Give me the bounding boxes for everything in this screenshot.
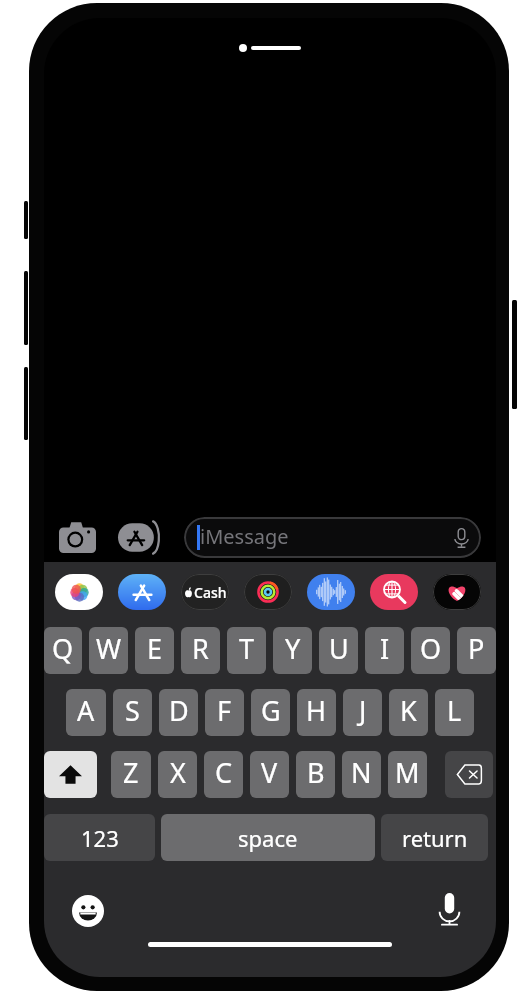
staticText: F	[217, 692, 232, 729]
button[interactable]: B	[296, 751, 335, 798]
staticText: K	[400, 692, 417, 729]
staticText: iMessage	[200, 523, 289, 550]
staticText: space	[238, 823, 298, 853]
staticText: G	[261, 692, 281, 729]
button[interactable]: iMessage	[184, 517, 481, 558]
staticText: S	[125, 692, 140, 729]
staticText: Y	[285, 630, 301, 667]
button[interactable]: space	[161, 814, 375, 861]
button[interactable]: J	[343, 689, 382, 736]
staticText: V	[261, 754, 278, 791]
staticText: E	[147, 630, 163, 667]
button[interactable]: U	[319, 627, 358, 674]
button[interactable]: R	[181, 627, 220, 674]
button[interactable]: C	[204, 751, 243, 798]
button[interactable]: Emoji	[70, 893, 106, 929]
button[interactable]: Apps	[118, 517, 164, 557]
staticText: A	[77, 692, 95, 729]
button[interactable]: Apple Cash	[181, 574, 229, 610]
staticText: M	[395, 754, 420, 791]
button[interactable]: App	[55, 574, 103, 610]
button[interactable]: P	[457, 627, 496, 674]
staticText: D	[169, 692, 189, 729]
button[interactable]: O	[411, 627, 450, 674]
staticText: O	[420, 630, 442, 667]
button[interactable]: M	[388, 751, 427, 798]
staticText: N	[351, 754, 372, 791]
staticText: Z	[123, 754, 139, 791]
button[interactable]: Z	[111, 751, 151, 798]
button[interactable]: X	[158, 751, 197, 798]
button[interactable]: L	[435, 689, 474, 736]
button[interactable]: App	[370, 574, 418, 610]
button[interactable]: K	[389, 689, 428, 736]
button[interactable]: Y	[273, 627, 312, 674]
button[interactable]: App	[307, 574, 355, 610]
button[interactable]: N	[342, 751, 381, 798]
staticText: Cash	[194, 583, 227, 602]
staticText: J	[359, 692, 367, 729]
staticText: C	[215, 754, 233, 791]
button[interactable]: F	[205, 689, 244, 736]
button[interactable]: I	[365, 627, 404, 674]
button[interactable]: S	[113, 689, 152, 736]
button[interactable]: H	[297, 689, 336, 736]
staticText: U	[329, 630, 349, 667]
button[interactable]: return	[381, 814, 488, 861]
button[interactable]: T	[227, 627, 266, 674]
staticText: I	[380, 630, 390, 667]
staticText: return	[402, 823, 468, 853]
staticText: X	[170, 754, 186, 791]
staticText: B	[307, 754, 325, 791]
staticText: Q	[52, 630, 74, 667]
button[interactable]: 123	[44, 814, 155, 861]
button[interactable]: Delete	[445, 751, 493, 798]
staticText: 123	[81, 823, 119, 853]
button[interactable]: Shift	[44, 751, 97, 798]
staticText: R	[192, 630, 209, 667]
button[interactable]: D	[159, 689, 198, 736]
staticText: H	[306, 692, 327, 729]
button[interactable]: Q	[44, 627, 82, 674]
button[interactable]: E	[135, 627, 174, 674]
button[interactable]: Dictation	[431, 891, 467, 927]
button[interactable]: App	[244, 574, 292, 610]
button[interactable]: App	[433, 574, 481, 610]
button[interactable]: Camera	[56, 517, 98, 557]
button[interactable]: G	[251, 689, 290, 736]
button[interactable]: App	[118, 574, 166, 610]
button[interactable]: A	[66, 689, 106, 736]
staticText: W	[96, 630, 122, 667]
staticText: P	[468, 630, 485, 667]
staticText: L	[447, 692, 462, 729]
staticText: T	[239, 630, 255, 667]
button[interactable]: W	[89, 627, 128, 674]
button[interactable]: V	[250, 751, 289, 798]
